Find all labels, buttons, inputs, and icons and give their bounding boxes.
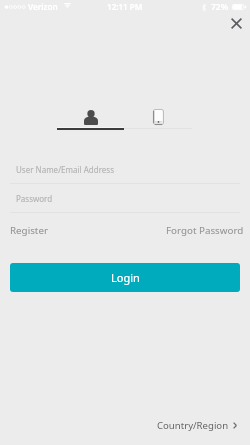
staticText: Password [16,193,53,204]
button[interactable]: Password [10,187,240,213]
staticText: User Name/Email Address [16,164,115,175]
button[interactable]: Sign in with phone number [124,105,192,131]
button[interactable]: User Name/Email Address [10,158,240,184]
button[interactable]: Login [10,263,240,292]
staticText: 72% [211,1,229,13]
staticText: Forgot Password [166,224,244,237]
staticText: Verizon [28,1,58,12]
staticText: 12:11 PM [107,1,143,12]
staticText: Login [111,270,140,285]
button[interactable]: Forgot Password [166,224,244,237]
button[interactable]: Register [10,224,48,237]
staticText: Register [10,224,48,237]
button[interactable]: Country/Region [157,419,237,432]
staticText: Country/Region [157,419,229,432]
button[interactable]: Close [222,9,250,38]
button[interactable]: Sign in with user name [57,105,124,131]
